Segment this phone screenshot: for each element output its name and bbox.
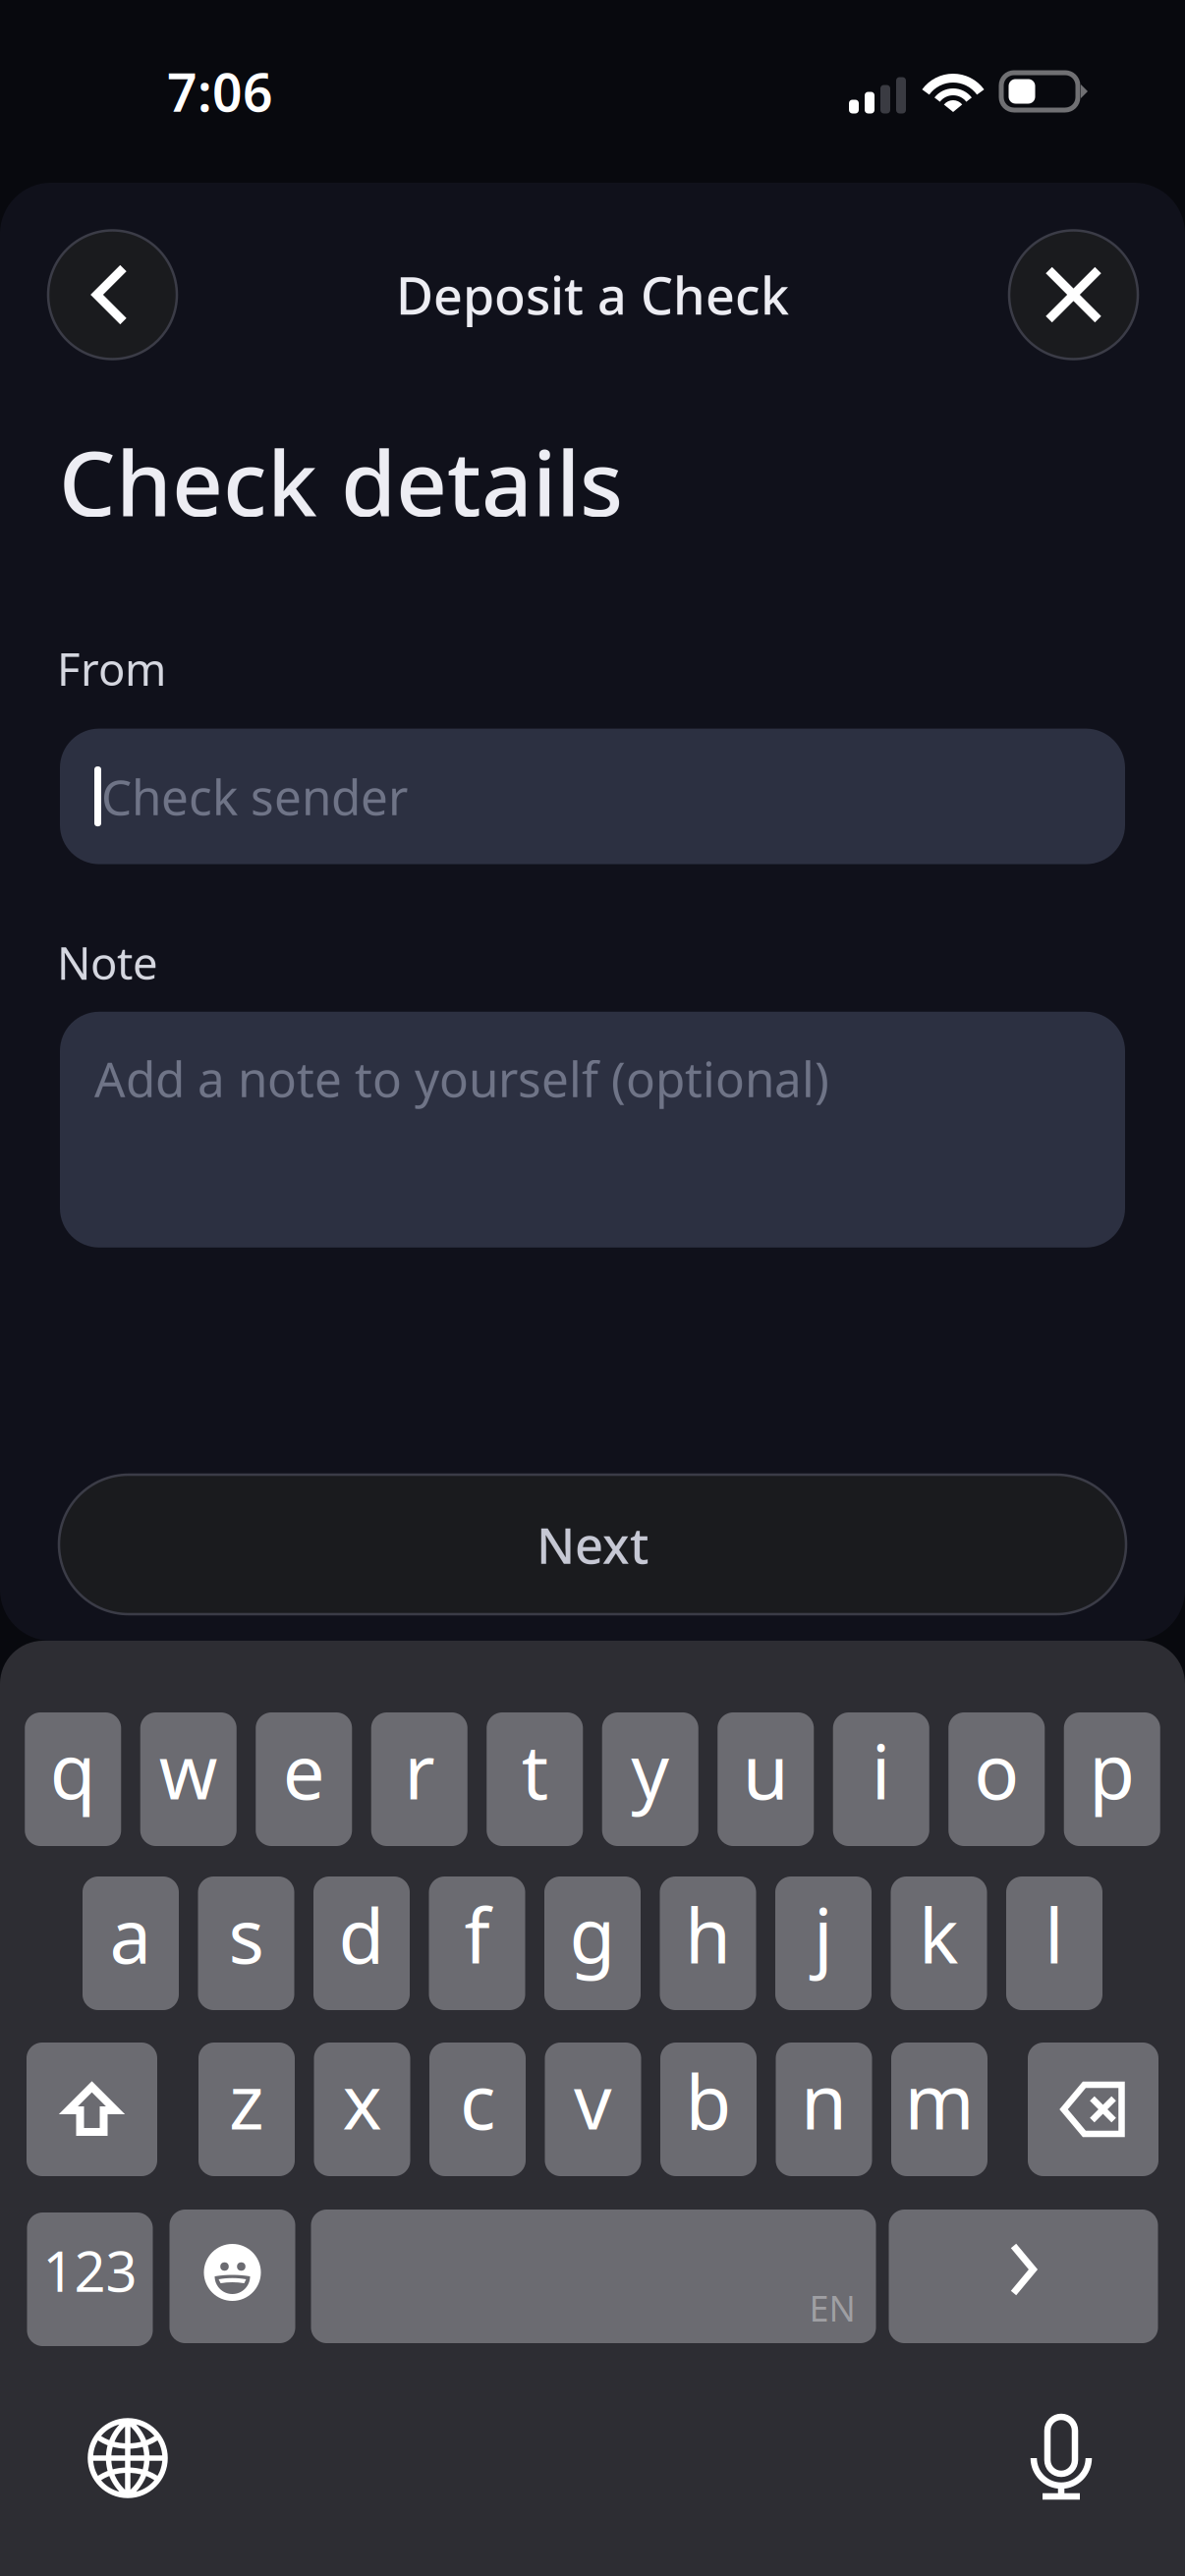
staticText: z — [229, 2051, 264, 2150]
staticText: u — [743, 1721, 789, 1820]
button[interactable]: j — [775, 1876, 872, 2010]
button[interactable]: z — [198, 2043, 295, 2176]
button[interactable]: e — [256, 1712, 352, 1846]
staticText: d — [339, 1885, 385, 1984]
staticText: o — [974, 1721, 1019, 1820]
staticText: x — [342, 2051, 382, 2150]
button[interactable]: Dictation — [1018, 2411, 1108, 2505]
button[interactable]: u — [717, 1712, 814, 1846]
staticText: g — [569, 1885, 616, 1984]
button[interactable]: k — [891, 1876, 987, 2010]
button[interactable]: n — [776, 2043, 872, 2176]
staticText: h — [685, 1885, 731, 1984]
button[interactable]: f — [429, 1876, 525, 2010]
staticText: j — [814, 1885, 833, 1984]
button[interactable]: 123 — [27, 2212, 153, 2346]
staticText: w — [159, 1721, 218, 1820]
button[interactable]: o — [948, 1712, 1045, 1846]
staticText: i — [871, 1721, 891, 1820]
button[interactable]: Shift — [27, 2043, 157, 2176]
staticText: p — [1089, 1721, 1135, 1820]
button[interactable]: h — [660, 1876, 756, 2010]
staticText: v — [574, 2051, 612, 2150]
staticText: a — [110, 1885, 152, 1984]
staticText: 123 — [43, 2234, 137, 2307]
staticText: s — [228, 1885, 264, 1984]
button[interactable]: v — [545, 2043, 641, 2176]
button[interactable]: Emoji — [169, 2210, 295, 2343]
button[interactable]: i — [833, 1712, 929, 1846]
staticText: Check details — [59, 422, 623, 541]
button[interactable]: m — [891, 2043, 987, 2176]
staticText: t — [522, 1721, 548, 1820]
button[interactable]: Return — [889, 2210, 1158, 2343]
button[interactable]: t — [487, 1712, 583, 1846]
button[interactable]: a — [83, 1876, 179, 2010]
button[interactable]: Switch keyboard — [83, 2411, 173, 2505]
staticText: y — [631, 1721, 669, 1820]
button[interactable]: p — [1064, 1712, 1160, 1846]
staticText: 7:06 — [167, 57, 273, 126]
button[interactable]: Delete — [1028, 2043, 1158, 2176]
button[interactable]: d — [313, 1876, 410, 2010]
button[interactable]: Back — [48, 230, 177, 359]
staticText: Next — [536, 1511, 649, 1578]
button[interactable]: q — [25, 1712, 121, 1846]
staticText: Deposit a Check — [396, 261, 789, 329]
staticText: c — [460, 2051, 495, 2150]
staticText: EN — [809, 2284, 855, 2331]
staticText: l — [1044, 1885, 1064, 1984]
staticText: Add a note to yourself (optional) — [94, 1046, 829, 1110]
button[interactable]: Space — [311, 2210, 876, 2343]
staticText: k — [919, 1885, 959, 1984]
button[interactable]: s — [198, 1876, 294, 2010]
staticText: Check sender — [101, 764, 408, 829]
button[interactable]: g — [544, 1876, 641, 2010]
staticText: n — [801, 2051, 847, 2150]
staticText: q — [50, 1721, 96, 1820]
button[interactable]: Next — [59, 1475, 1126, 1614]
button[interactable]: Close — [1009, 230, 1138, 359]
staticText: From — [57, 639, 166, 698]
staticText: f — [464, 1885, 490, 1984]
staticText: e — [283, 1721, 325, 1820]
button[interactable]: x — [314, 2043, 410, 2176]
button[interactable]: c — [429, 2043, 526, 2176]
staticText: b — [685, 2051, 732, 2150]
button[interactable]: y — [602, 1712, 698, 1846]
staticText: m — [904, 2051, 974, 2150]
button[interactable]: r — [371, 1712, 468, 1846]
button[interactable]: w — [140, 1712, 237, 1846]
button[interactable]: l — [1006, 1876, 1102, 2010]
staticText: Note — [57, 933, 158, 992]
button[interactable]: b — [660, 2043, 757, 2176]
staticText: r — [404, 1721, 434, 1820]
